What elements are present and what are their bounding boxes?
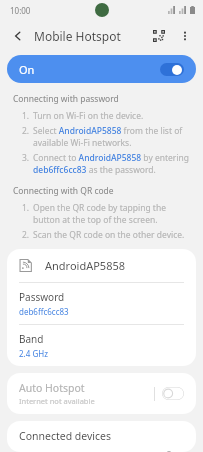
button[interactable]: Back [8, 26, 28, 46]
staticText: Connect to AndroidAP5858 by entering deb… [33, 152, 190, 176]
staticText: Open the QR code by tapping the button a… [33, 202, 190, 226]
staticText: 2.4 GHz [19, 348, 48, 359]
button[interactable]: Auto Hotspot toggle [162, 387, 184, 400]
staticText: 1. [22, 202, 33, 214]
button[interactable]: Connected devices [7, 421, 196, 452]
staticText: Mobile Hotspot [34, 28, 121, 44]
staticText: Password [19, 290, 65, 304]
staticText: 1. [22, 110, 33, 122]
button[interactable]: On [7, 55, 196, 83]
staticText: On [19, 62, 35, 77]
button[interactable]: Password [7, 283, 196, 324]
staticText: Internet not available [19, 396, 95, 406]
staticText: Band [19, 332, 44, 346]
staticText: Scan the QR code on the other device. [33, 229, 185, 241]
staticText: AndroidAP5858 [45, 258, 126, 273]
staticText: Auto Hotspot [19, 381, 85, 395]
staticText: Turn on Wi-Fi on the device. [33, 110, 144, 122]
button[interactable]: More options [175, 26, 195, 46]
staticText: 10:00 [10, 5, 31, 16]
staticText: Connected devices [19, 429, 112, 443]
staticText: deb6ffc6cc83 [19, 306, 69, 317]
button[interactable]: Band [7, 325, 196, 366]
staticText: 3. [22, 152, 33, 164]
staticText: Select AndroidAP5858 from the list of av… [33, 125, 190, 149]
button[interactable]: AndroidAP5858 [7, 249, 196, 282]
staticText: Connecting with password [13, 93, 119, 105]
button[interactable]: Auto Hotspot [7, 373, 196, 414]
staticText: Connecting with QR code [13, 185, 114, 197]
staticText: 2. [22, 229, 33, 241]
staticText: 2. [22, 125, 33, 137]
button[interactable]: Show QR code [147, 24, 171, 48]
